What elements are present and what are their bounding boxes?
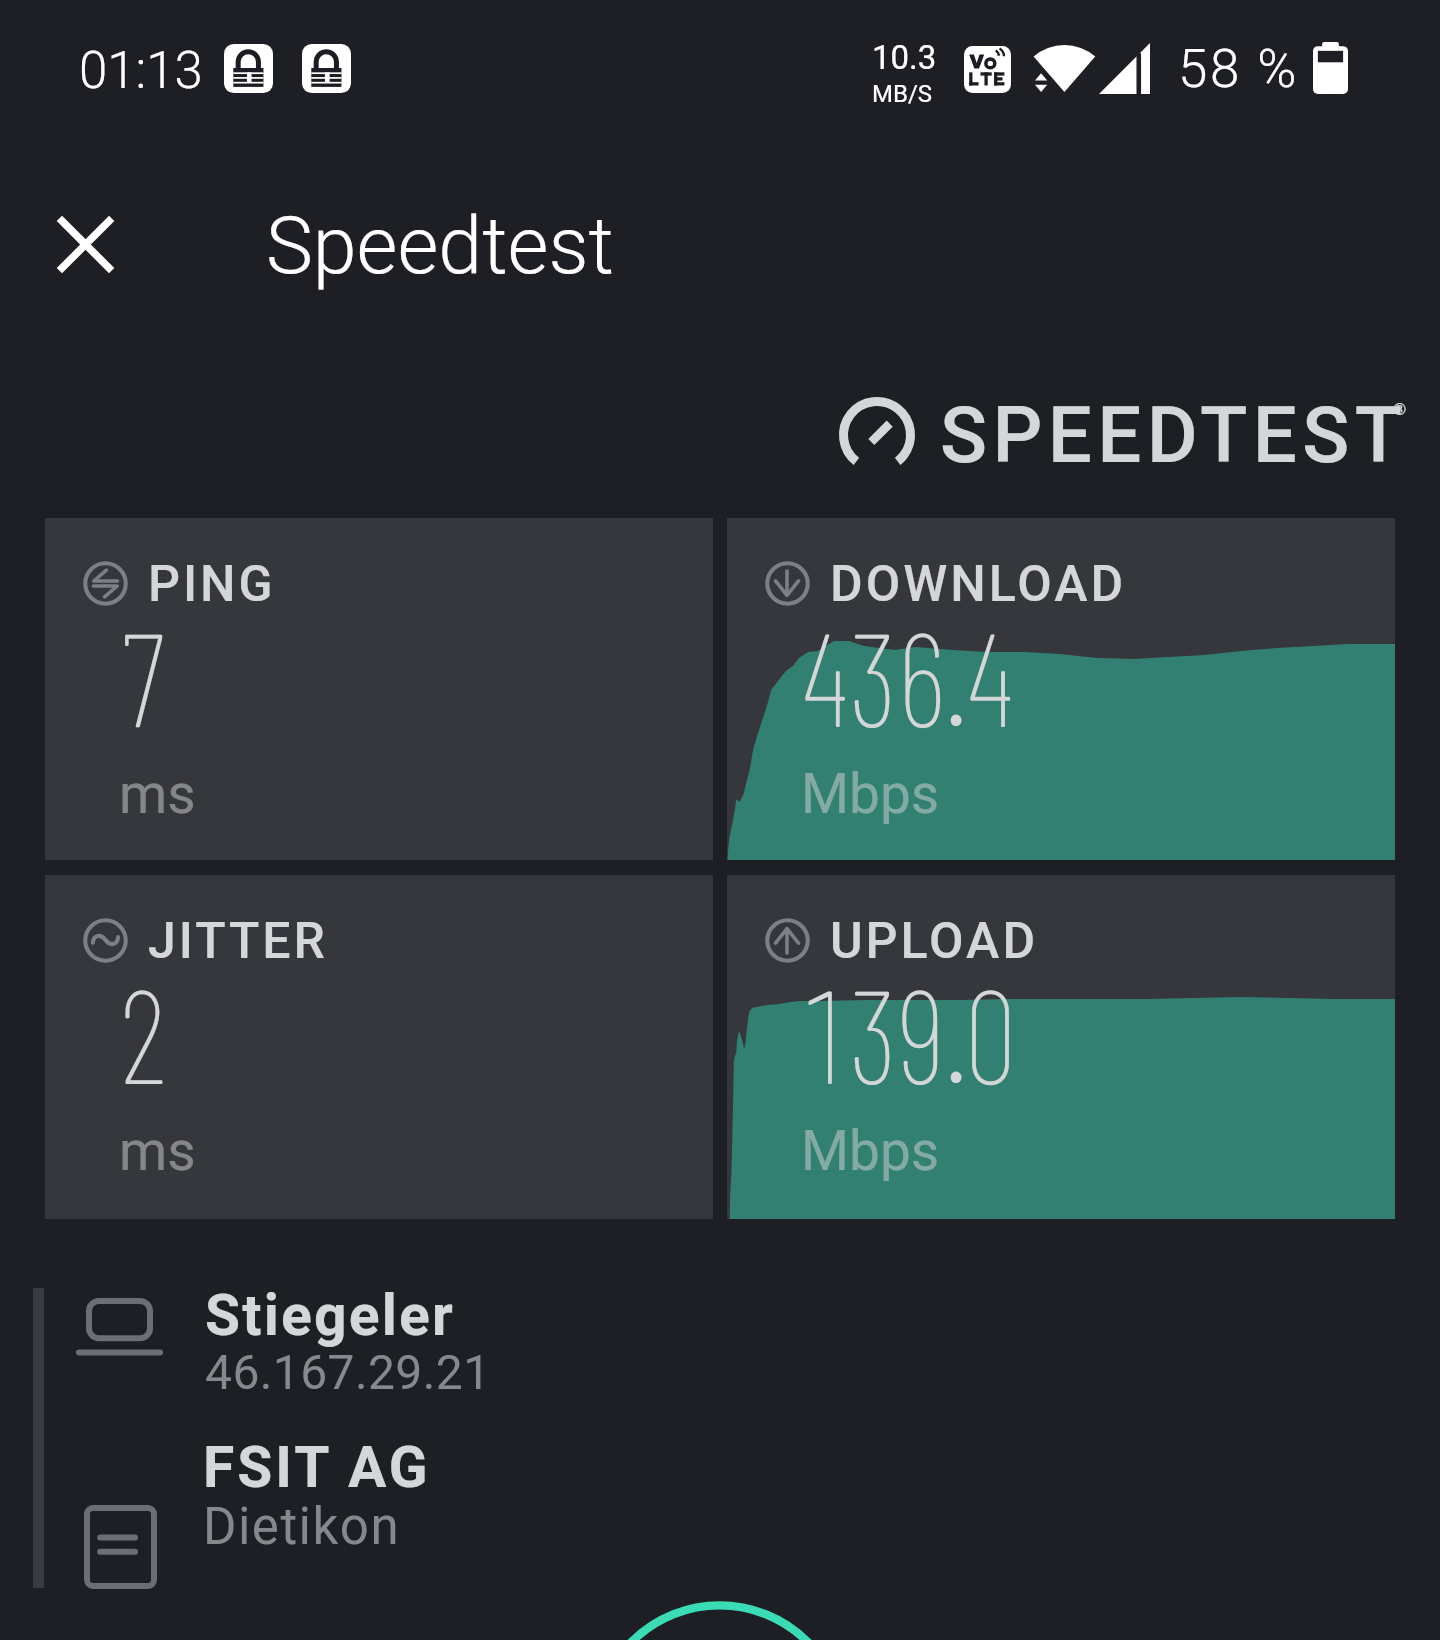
button[interactable]: UPLOAD [727,875,1395,1219]
staticText: 7 [119,595,168,753]
staticText: PING [148,555,276,614]
button[interactable]: JITTER [45,875,713,1219]
button[interactable]: Close [43,202,127,286]
staticText: Mbps [801,762,940,826]
staticText: ms [119,762,196,826]
staticText: ms [119,1119,196,1183]
staticText: Mbps [801,1119,940,1183]
staticText: 2 [119,952,168,1110]
staticText: 10.3 [872,38,937,77]
button[interactable]: DOWNLOAD [727,518,1395,860]
staticText: JITTER [148,912,328,971]
staticText: 139.0 [801,952,1015,1110]
staticText: 01:13 [79,41,203,101]
staticText: UPLOAD [830,912,1039,971]
staticText: Dietikon [203,1497,401,1557]
button[interactable]: FSIT AG [56,1434,1396,1590]
staticText: 58 % [1178,38,1299,100]
staticText: 436.4 [801,595,1015,753]
button[interactable]: Start test [595,1605,845,1640]
staticText: FSIT AG [203,1434,431,1501]
staticText: MB/S [872,80,933,108]
button[interactable]: PING [45,518,713,860]
staticText: SPEEDTEST [940,390,1408,481]
staticText: 46.167.29.21 [205,1344,491,1400]
staticText: DOWNLOAD [830,555,1127,614]
button[interactable]: Stiegeler [56,1282,1396,1402]
staticText: Stiegeler [205,1282,456,1349]
staticText: Speedtest [266,200,614,293]
staticText: ® [1393,399,1407,419]
